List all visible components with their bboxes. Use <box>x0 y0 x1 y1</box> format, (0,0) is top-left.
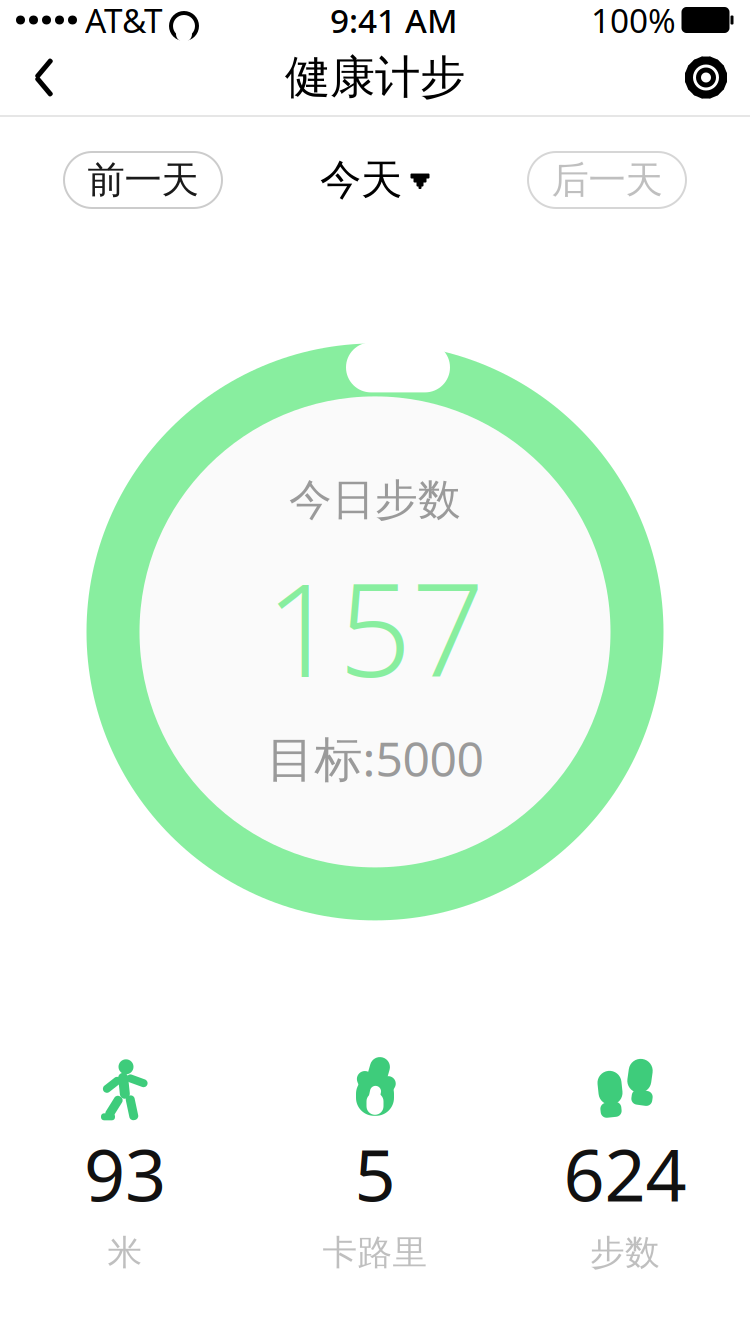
button[interactable]: Back <box>14 47 74 107</box>
staticText: 步数 <box>590 1231 660 1274</box>
staticText: 前一天 <box>87 157 198 203</box>
staticText: 9:41 AM <box>330 0 458 42</box>
staticText: 健康计步 <box>285 50 465 105</box>
staticText: 624 <box>563 1126 686 1221</box>
staticText: 5 <box>354 1126 395 1221</box>
staticText: 今日步数 <box>289 474 461 526</box>
staticText: 卡路里 <box>322 1231 427 1274</box>
staticText: 100% <box>591 0 676 42</box>
button[interactable]: 前一天 <box>64 152 222 208</box>
staticText: 米 <box>107 1231 142 1274</box>
staticText: 目标:5000 <box>266 726 483 790</box>
staticText: 后一天 <box>551 157 662 203</box>
button[interactable]: Settings <box>676 47 736 107</box>
staticText: 今天 <box>320 155 402 205</box>
button[interactable]: 今天 <box>320 152 430 208</box>
staticText: AT&T <box>85 0 163 42</box>
staticText: 93 <box>84 1126 166 1221</box>
staticText: 157 <box>265 542 484 712</box>
button[interactable]: 后一天 <box>528 152 686 208</box>
